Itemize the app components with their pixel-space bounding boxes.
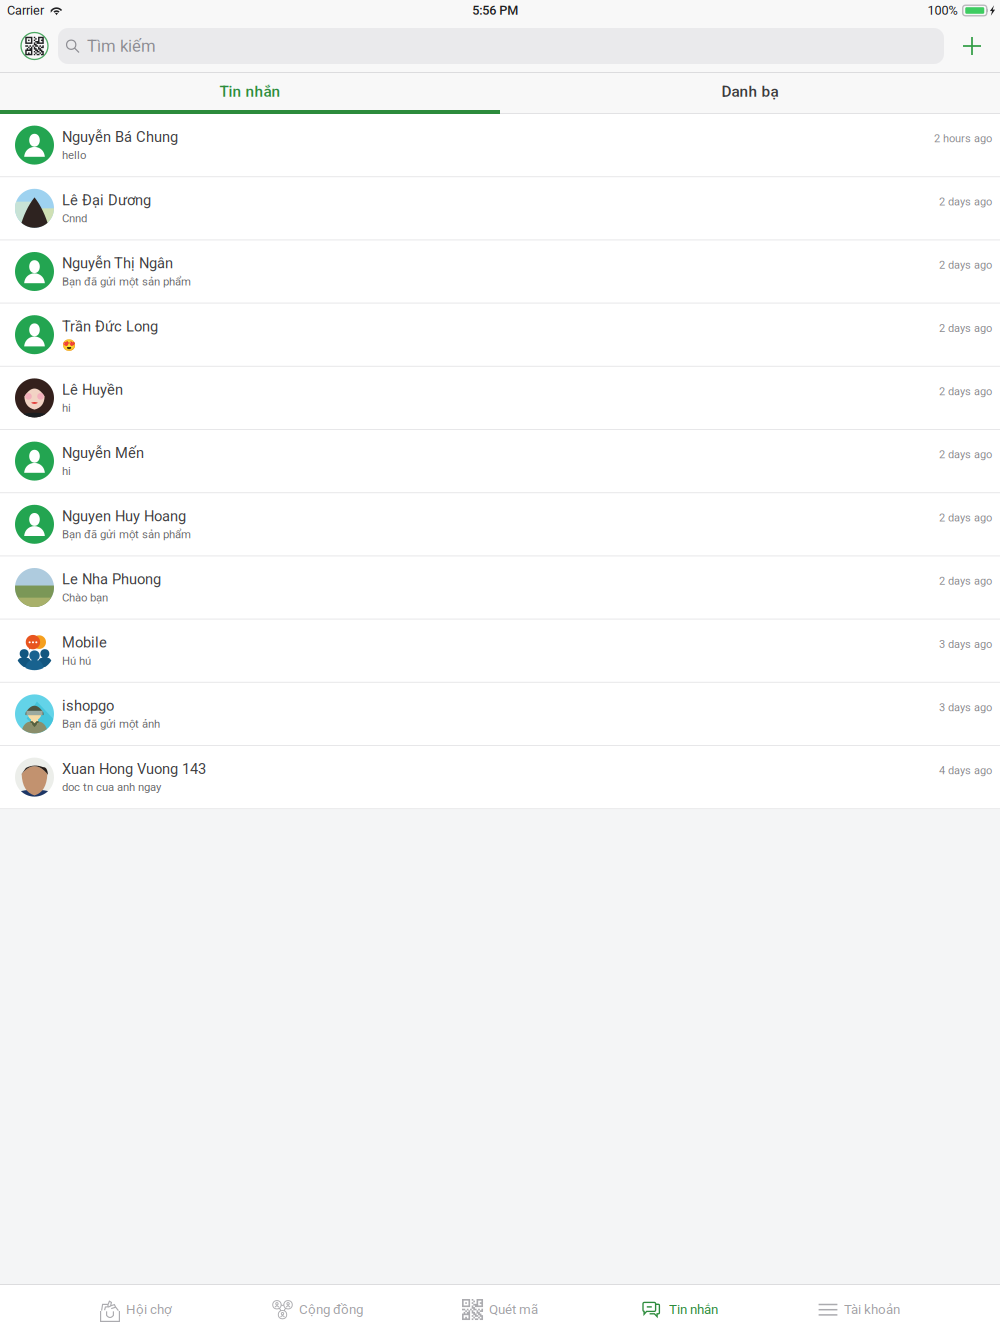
button[interactable]: Mobile bbox=[0, 620, 1000, 683]
staticText: Tin nhắn bbox=[219, 82, 280, 100]
staticText: Danh bạ bbox=[721, 82, 778, 100]
staticText: Nguyễn Thị Ngân bbox=[62, 255, 173, 272]
staticText: Bạn đã gửi một ảnh bbox=[62, 717, 160, 731]
staticText: Nguyễn Bá Chung bbox=[62, 128, 178, 146]
staticText: Bạn đã gửi một sản phẩm bbox=[62, 528, 191, 541]
button[interactable]: Xuan Hong Vuong 143 bbox=[0, 746, 1000, 809]
staticText: Trần Đức Long bbox=[62, 318, 158, 335]
button[interactable]: Hội chợ bbox=[0, 1285, 180, 1334]
button[interactable]: Nguyễn Thị Ngân bbox=[0, 240, 1000, 304]
staticText: 4 days ago bbox=[939, 764, 992, 777]
staticText: Tìm kiếm bbox=[87, 36, 156, 56]
staticText: Mobile bbox=[62, 634, 107, 651]
button[interactable]: ishopgo bbox=[0, 683, 1000, 746]
staticText: 3 days ago bbox=[939, 638, 992, 651]
button[interactable]: Trần Đức Long bbox=[0, 304, 1000, 367]
button[interactable]: Cộng đồng bbox=[180, 1285, 370, 1334]
staticText: Lê Huyền bbox=[62, 381, 123, 398]
staticText: Chào bạn bbox=[62, 591, 108, 604]
button[interactable]: Nguyễn Mến bbox=[0, 430, 1000, 493]
button[interactable]: Lê Huyền bbox=[0, 367, 1000, 430]
staticText: Hú hú bbox=[62, 654, 91, 667]
staticText: Xuan Hong Vuong 143 bbox=[62, 760, 206, 778]
staticText: 2 days ago bbox=[939, 258, 992, 271]
staticText: 2 days ago bbox=[939, 574, 992, 587]
button[interactable]: Tài khoản bbox=[727, 1285, 1000, 1334]
staticText: 2 days ago bbox=[939, 448, 992, 461]
staticText: Tin nhắn bbox=[669, 1302, 718, 1317]
staticText: Quét mã bbox=[489, 1302, 538, 1317]
staticText: Lê Đại Dương bbox=[62, 192, 151, 209]
staticText: hi bbox=[62, 465, 71, 478]
button[interactable]: Nguyễn Bá Chung bbox=[0, 114, 1000, 177]
button[interactable]: Le Nha Phuong bbox=[0, 556, 1000, 620]
staticText: 2 days ago bbox=[939, 195, 992, 208]
staticText: 5:56 PM bbox=[472, 3, 518, 18]
staticText: 😍 bbox=[62, 338, 76, 351]
button[interactable]: Quét mã QR bbox=[19, 28, 50, 64]
staticText: 3 days ago bbox=[939, 701, 992, 714]
staticText: Nguyễn Mến bbox=[62, 444, 144, 462]
staticText: Carrier bbox=[7, 3, 44, 18]
staticText: Cộng đồng bbox=[299, 1302, 363, 1317]
staticText: 2 hours ago bbox=[934, 132, 992, 145]
button[interactable]: Nguyen Huy Hoang bbox=[0, 493, 1000, 556]
staticText: Cnnd bbox=[62, 212, 87, 225]
button[interactable]: Tin nhắn bbox=[550, 1285, 727, 1334]
staticText: hi bbox=[62, 401, 71, 415]
staticText: Bạn đã gửi một sản phẩm bbox=[62, 275, 191, 288]
staticText: hello bbox=[62, 149, 86, 162]
staticText: Le Nha Phuong bbox=[62, 571, 161, 588]
button[interactable]: Danh bạ bbox=[500, 73, 1000, 114]
button[interactable]: Tạo mới bbox=[944, 28, 1000, 64]
staticText: doc tn cua anh ngay bbox=[62, 781, 161, 794]
button[interactable]: Tin nhắn bbox=[0, 73, 500, 114]
staticText: 2 days ago bbox=[939, 511, 992, 524]
staticText: Tài khoản bbox=[844, 1302, 900, 1317]
button[interactable]: Lê Đại Dương bbox=[0, 177, 1000, 240]
button[interactable]: Quét mã bbox=[370, 1285, 550, 1334]
staticText: 2 days ago bbox=[939, 385, 992, 398]
staticText: 2 days ago bbox=[939, 322, 992, 335]
staticText: 100% bbox=[927, 3, 957, 18]
staticText: ishopgo bbox=[62, 697, 114, 714]
staticText: Nguyen Huy Hoang bbox=[62, 508, 186, 525]
staticText: Hội chợ bbox=[126, 1302, 172, 1317]
